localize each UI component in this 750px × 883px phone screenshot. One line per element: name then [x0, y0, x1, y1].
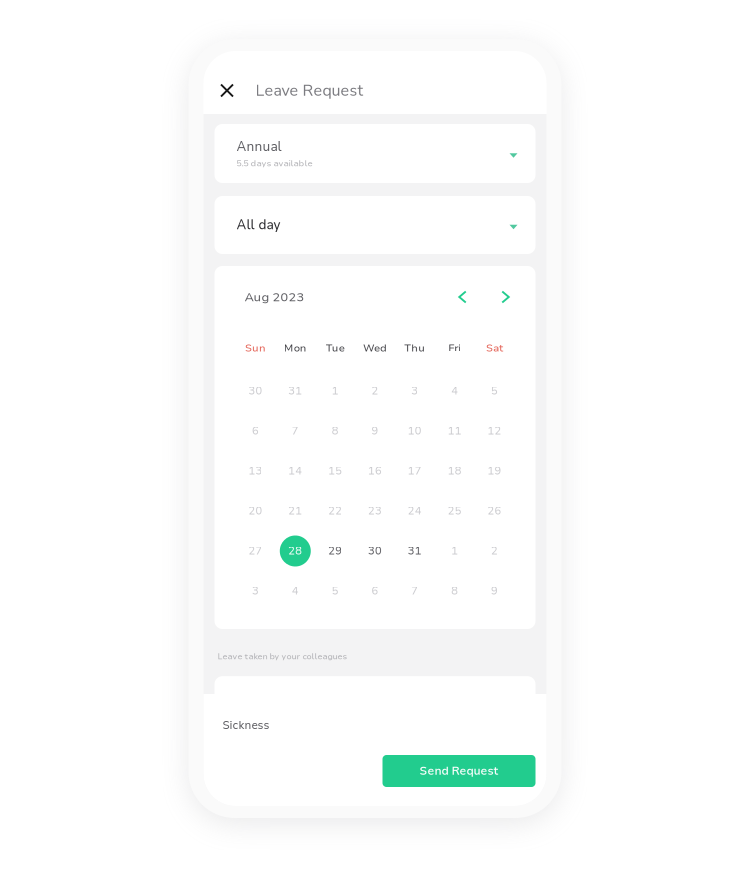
staticText: 11 [448, 423, 462, 438]
staticText: Send Request [419, 763, 498, 779]
button[interactable]: 12 [475, 411, 514, 451]
staticText: 2 [491, 543, 498, 558]
button[interactable]: 26 [475, 491, 514, 531]
button[interactable]: 28 [275, 531, 315, 571]
staticText: 7 [411, 583, 418, 598]
staticText: 14 [288, 463, 302, 478]
button[interactable]: 23 [355, 491, 395, 531]
button[interactable]: 17 [395, 451, 435, 491]
button[interactable]: 25 [435, 491, 475, 531]
button[interactable]: 21 [275, 491, 315, 531]
button[interactable]: 6 [355, 571, 395, 611]
button[interactable]: Next month [490, 282, 520, 312]
staticText: 1 [451, 543, 458, 558]
staticText: All day [236, 216, 280, 234]
staticText: 3 [411, 383, 418, 398]
button[interactable]: 2 [355, 371, 395, 411]
button[interactable]: 31 [395, 531, 435, 571]
button[interactable]: Send Request [382, 755, 535, 787]
button[interactable]: All day [214, 196, 535, 254]
staticText: Sat [486, 341, 503, 355]
button[interactable]: 31 [275, 371, 315, 411]
button[interactable]: 29 [315, 531, 355, 571]
staticText: 6 [252, 423, 259, 438]
button[interactable]: 15 [315, 451, 355, 491]
button[interactable]: 8 [435, 571, 475, 611]
button[interactable]: 4 [275, 571, 315, 611]
staticText: 26 [488, 503, 502, 518]
staticText: 31 [408, 543, 422, 558]
button[interactable]: 14 [275, 451, 315, 491]
button[interactable]: 9 [475, 571, 514, 611]
staticText: 5 [491, 383, 498, 398]
button[interactable]: 6 [235, 411, 275, 451]
button[interactable]: 5 [475, 371, 514, 411]
button[interactable]: Previous month [447, 282, 477, 312]
button[interactable]: 10 [395, 411, 435, 451]
button[interactable]: 27 [235, 531, 275, 571]
staticText: Leave taken by your colleagues [217, 651, 347, 662]
button[interactable]: 19 [475, 451, 514, 491]
button[interactable]: 1 [435, 531, 475, 571]
button[interactable]: Annual [214, 124, 535, 183]
button[interactable]: 9 [355, 411, 395, 451]
staticText: 27 [248, 543, 262, 558]
staticText: 12 [488, 423, 502, 438]
staticText: Sun [245, 341, 266, 355]
staticText: 19 [488, 463, 502, 478]
staticText: 29 [328, 543, 342, 558]
staticText: 30 [248, 383, 262, 398]
button[interactable]: 30 [355, 531, 395, 571]
button[interactable]: 1 [315, 371, 355, 411]
staticText: 10 [408, 423, 422, 438]
staticText: 16 [368, 463, 382, 478]
button[interactable]: 8 [315, 411, 355, 451]
button[interactable]: 3 [395, 371, 435, 411]
button[interactable]: 20 [235, 491, 275, 531]
button[interactable]: 2 [475, 531, 514, 571]
staticText: 21 [288, 503, 302, 518]
staticText: 5.5 days available [236, 157, 312, 169]
staticText: Sickness [222, 718, 269, 733]
staticText: 5 [332, 583, 339, 598]
staticText: 30 [368, 543, 382, 558]
staticText: Fri [448, 341, 461, 355]
button[interactable]: 11 [435, 411, 475, 451]
button[interactable]: 16 [355, 451, 395, 491]
staticText: 20 [248, 503, 262, 518]
button[interactable]: 24 [395, 491, 435, 531]
staticText: 6 [371, 583, 378, 598]
staticText: 22 [328, 503, 342, 518]
staticText: 13 [248, 463, 262, 478]
staticText: 4 [451, 383, 458, 398]
button[interactable]: 4 [435, 371, 475, 411]
button[interactable]: 3 [235, 571, 275, 611]
staticText: 17 [408, 463, 422, 478]
staticText: 8 [332, 423, 339, 438]
staticText: Tue [326, 341, 345, 355]
button[interactable]: Close [208, 69, 246, 111]
staticText: Annual [236, 138, 281, 155]
staticText: 3 [252, 583, 259, 598]
staticText: 1 [332, 383, 339, 398]
staticText: 8 [451, 583, 458, 598]
staticText: 31 [288, 383, 302, 398]
staticText: 24 [408, 503, 422, 518]
staticText: 15 [328, 463, 342, 478]
button[interactable]: 18 [435, 451, 475, 491]
staticText: Leave Request [255, 80, 363, 101]
staticText: 4 [292, 583, 299, 598]
button[interactable]: 7 [395, 571, 435, 611]
staticText: Mon [284, 341, 307, 355]
staticText: 18 [448, 463, 462, 478]
staticText: 9 [371, 423, 378, 438]
staticText: Thu [404, 341, 425, 355]
button[interactable]: 5 [315, 571, 355, 611]
staticText: 2 [371, 383, 378, 398]
staticText: Wed [363, 341, 387, 355]
button[interactable]: 13 [235, 451, 275, 491]
staticText: 23 [368, 503, 382, 518]
button[interactable]: 22 [315, 491, 355, 531]
button[interactable]: 7 [275, 411, 315, 451]
button[interactable]: 30 [235, 371, 275, 411]
